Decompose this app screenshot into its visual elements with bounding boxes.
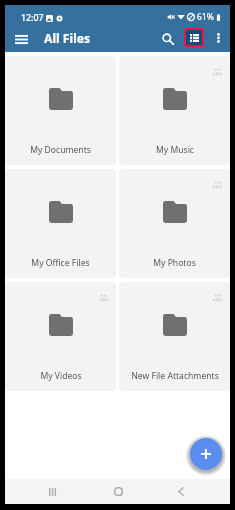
button[interactable]: Recent apps [34, 479, 70, 504]
button[interactable]: My Music [119, 56, 230, 165]
button[interactable]: New File Attachments [119, 282, 230, 391]
staticText: My Office Files [31, 257, 90, 269]
button[interactable]: Back [163, 479, 199, 504]
staticText: My Documents [30, 144, 91, 156]
button[interactable]: Change view [186, 30, 202, 45]
button[interactable]: My Videos [5, 282, 116, 391]
button[interactable]: More options [209, 28, 227, 48]
staticText: New File Attachments [131, 370, 219, 382]
button[interactable]: Add new item [190, 438, 222, 470]
button[interactable]: My Photos [119, 169, 230, 278]
button[interactable]: My Documents [5, 56, 116, 165]
staticText: 12:07 [21, 12, 44, 24]
staticText: All Files [44, 30, 91, 47]
button[interactable]: My Office Files [5, 169, 116, 278]
staticText: 61% [197, 11, 214, 23]
staticText: My Videos [40, 370, 82, 382]
button[interactable]: Search [157, 28, 178, 49]
staticText: My Music [156, 144, 194, 156]
button[interactable]: Home [100, 479, 136, 504]
button[interactable]: Navigation menu [10, 30, 33, 48]
staticText: My Photos [153, 257, 196, 269]
